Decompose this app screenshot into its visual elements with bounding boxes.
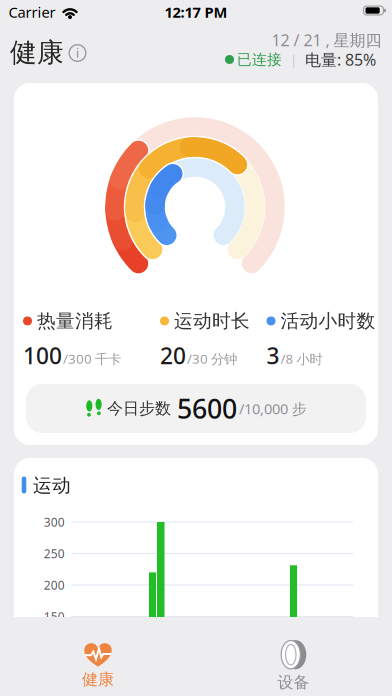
staticText: /8 小时 [280, 350, 322, 367]
staticText: 今日步数 [107, 399, 171, 418]
staticText: 已连接 [237, 50, 282, 68]
staticText: /30 分钟 [187, 350, 237, 367]
staticText: 100 [23, 340, 62, 370]
button[interactable]: 今日步数 [26, 384, 366, 433]
staticText: 运动 [33, 474, 71, 497]
staticText: 300 [44, 514, 65, 530]
staticText: /10,000 步 [239, 399, 307, 418]
staticText: 3 [266, 340, 279, 370]
staticText: 健康 [10, 36, 64, 69]
staticText: 20 [160, 340, 186, 370]
staticText: 热量消耗 [37, 309, 113, 332]
staticText: Carrier [8, 2, 55, 22]
button[interactable]: 信息 [68, 44, 86, 62]
staticText: 健康 [82, 670, 114, 689]
staticText: | [290, 51, 297, 68]
staticText: 运动时长 [174, 309, 250, 332]
staticText: 200 [44, 577, 65, 593]
staticText: 12:17 PM [164, 2, 227, 22]
button[interactable]: 健康 [82, 643, 114, 689]
staticText: /300 千卡 [63, 350, 121, 367]
staticText: 设备 [277, 673, 309, 692]
staticText: 250 [44, 545, 65, 561]
staticText: 150 [44, 608, 65, 624]
staticText: 5600 [177, 391, 237, 426]
staticText: i [76, 45, 79, 61]
staticText: 电量: 85% [305, 49, 376, 70]
staticText: 12 / 21 , 星期四 [271, 29, 381, 51]
button[interactable]: 设备 [277, 640, 309, 692]
staticText: 活动小时数 [280, 309, 375, 332]
